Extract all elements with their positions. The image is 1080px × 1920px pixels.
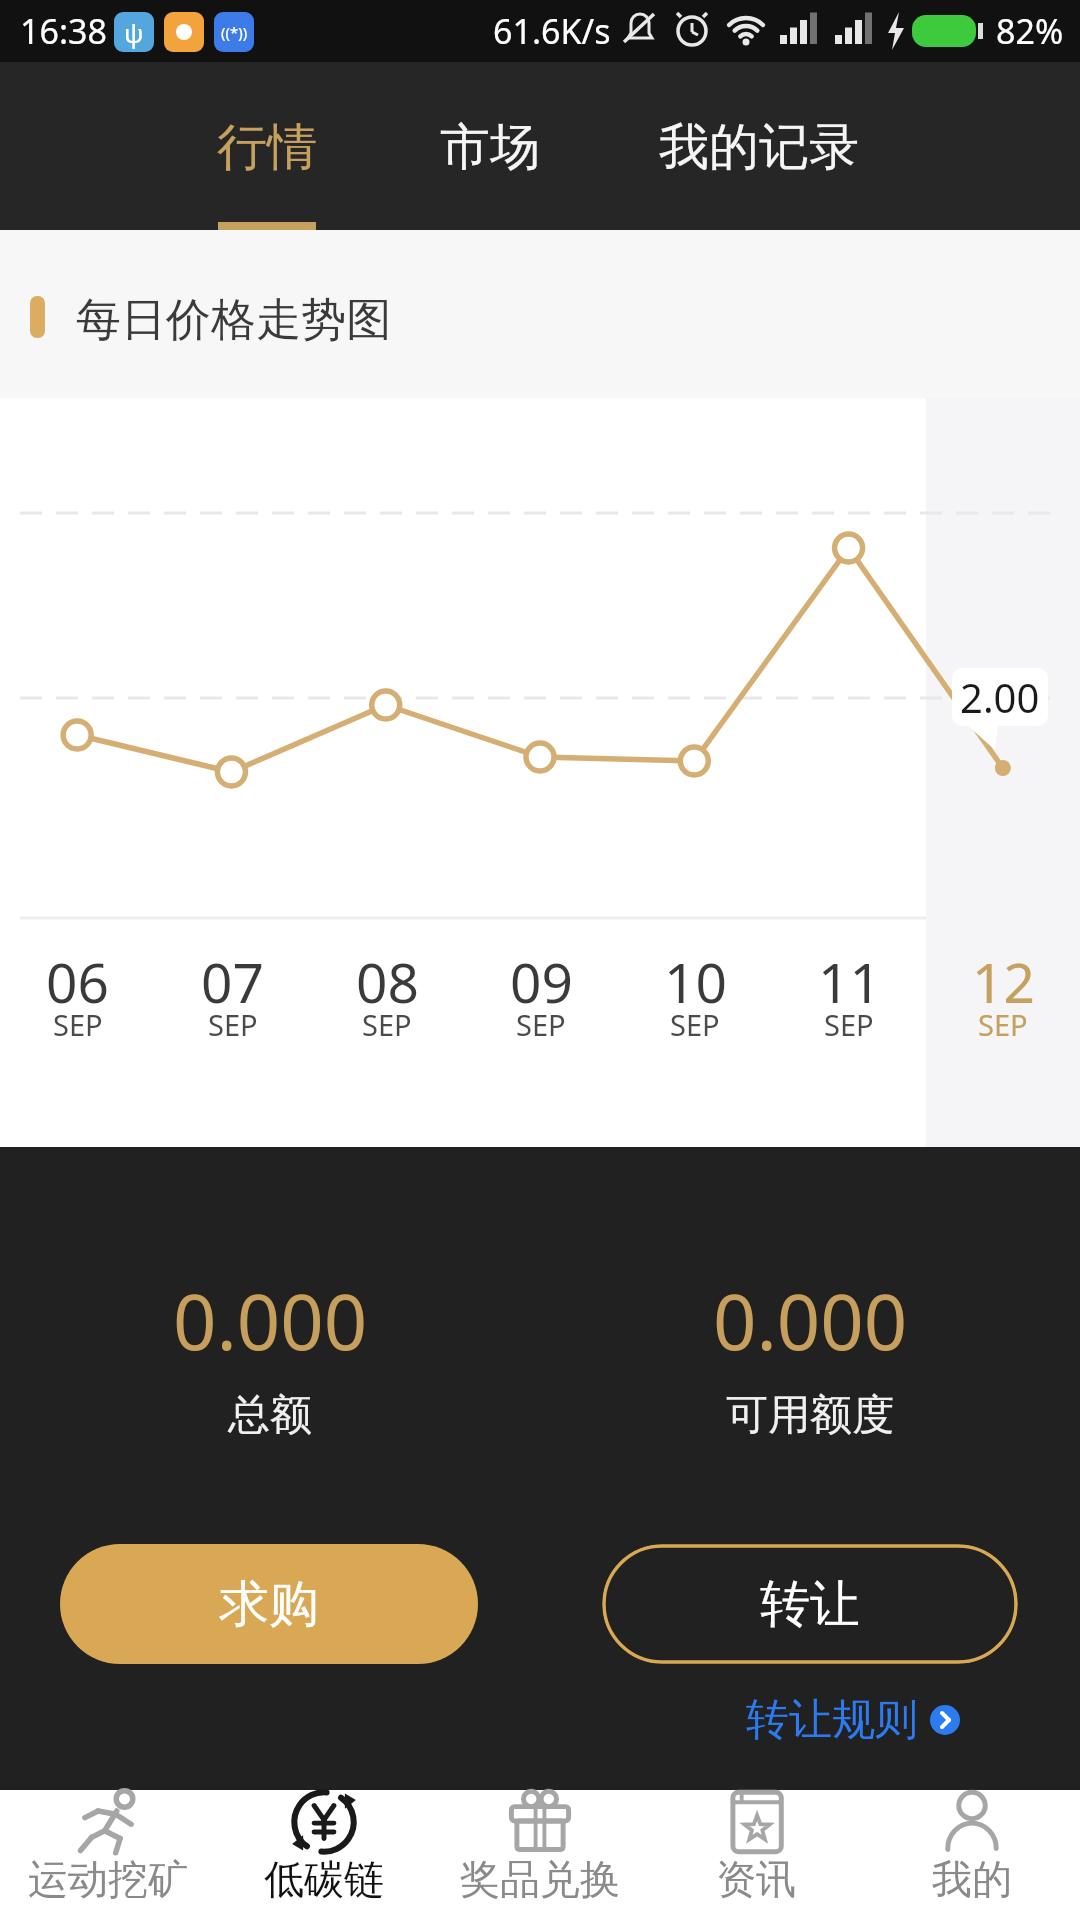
staticText: 82%: [996, 8, 1064, 54]
button[interactable]: 求购: [60, 1544, 478, 1664]
staticText: 0.000: [713, 1269, 908, 1373]
staticText: 转让: [760, 1573, 860, 1636]
staticText: 11: [818, 944, 881, 1019]
button[interactable]: 奖品兑换: [432, 1790, 648, 1920]
staticText: SEP: [516, 1005, 566, 1044]
staticText: 0.000: [173, 1269, 368, 1373]
staticText: 61.6K/s: [493, 8, 611, 54]
staticText: 奖品兑换: [460, 1854, 620, 1904]
button[interactable]: 运动挖矿: [0, 1790, 216, 1920]
staticText: 求购: [219, 1573, 319, 1636]
staticText: ψ: [124, 15, 144, 50]
staticText: SEP: [53, 1005, 103, 1044]
staticText: 2.00: [960, 670, 1040, 724]
button[interactable]: 我的: [864, 1790, 1080, 1920]
staticText: 可用额度: [726, 1389, 894, 1442]
staticText: 09: [510, 944, 573, 1019]
staticText: ((*)): [221, 22, 248, 42]
button[interactable]: 行情: [207, 108, 327, 186]
staticText: 低碳链: [264, 1854, 384, 1904]
staticText: 我的: [932, 1854, 1012, 1904]
staticText: 10: [664, 944, 727, 1019]
staticText: 总额: [228, 1389, 312, 1442]
button[interactable]: 我的记录: [647, 108, 871, 186]
staticText: 06: [46, 944, 109, 1019]
button[interactable]: 转让规则: [700, 1692, 960, 1748]
staticText: SEP: [362, 1005, 412, 1044]
button[interactable]: 转让: [602, 1544, 1018, 1664]
button[interactable]: 低碳链: [216, 1790, 432, 1920]
staticText: SEP: [824, 1005, 874, 1044]
staticText: 资讯: [716, 1854, 796, 1904]
staticText: 每日价格走势图: [76, 292, 391, 349]
staticText: 12: [972, 944, 1035, 1019]
staticText: 转让规则: [746, 1693, 918, 1747]
staticText: SEP: [978, 1005, 1028, 1044]
staticText: SEP: [208, 1005, 258, 1044]
staticText: 运动挖矿: [28, 1854, 188, 1904]
staticText: 07: [201, 944, 264, 1019]
button[interactable]: 资讯: [648, 1790, 864, 1920]
staticText: 我的记录: [659, 116, 859, 179]
staticText: SEP: [670, 1005, 720, 1044]
staticText: 行情: [217, 116, 317, 179]
staticText: 市场: [440, 116, 540, 179]
staticText: 16:38: [20, 8, 107, 54]
button[interactable]: 市场: [430, 108, 550, 186]
staticText: 08: [356, 944, 419, 1019]
